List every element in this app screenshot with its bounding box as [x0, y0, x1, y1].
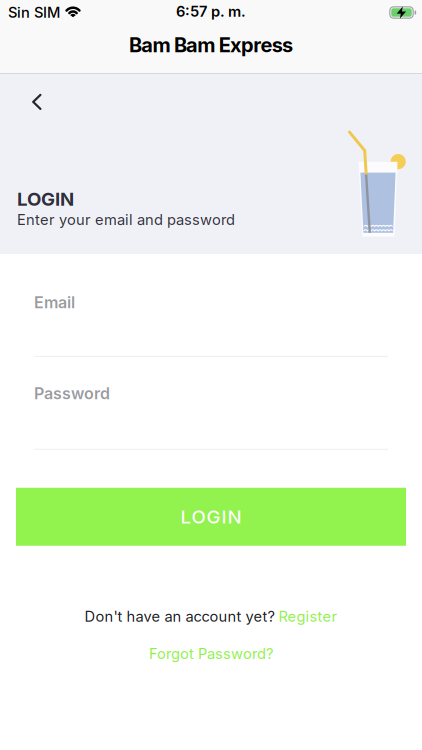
staticText: LOGIN — [17, 188, 74, 210]
staticText: Password — [34, 384, 110, 403]
staticText: LOGIN — [180, 506, 241, 528]
button[interactable]: Register — [278, 608, 337, 625]
staticText: Don't have an account yet? — [84, 608, 278, 625]
staticText: Forgot Password? — [149, 645, 273, 662]
button[interactable]: Back — [24, 88, 50, 116]
staticText: Enter your email and password — [17, 211, 235, 228]
button[interactable]: LOGIN — [16, 488, 406, 546]
staticText: Register — [278, 608, 337, 625]
button[interactable]: Forgot Password? — [149, 645, 273, 662]
staticText: Sin SIM — [8, 4, 60, 21]
staticText: 6:57 p. m. — [176, 3, 246, 20]
staticText: Bam Bam Express — [129, 33, 293, 57]
staticText: Email — [34, 293, 75, 312]
